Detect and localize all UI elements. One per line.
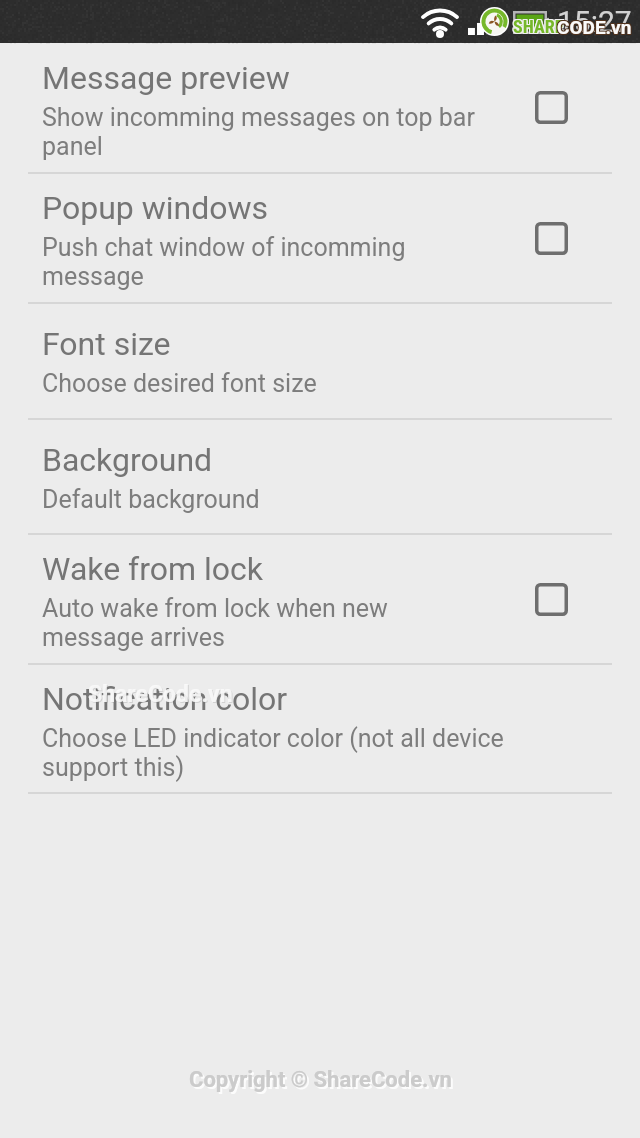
staticText: SHARE — [512, 16, 563, 37]
staticText: SHARE — [513, 15, 564, 36]
staticText: Background — [42, 441, 213, 479]
button[interactable]: Toggle Wake from lock — [535, 583, 568, 616]
staticText: CODE.vn — [556, 15, 631, 37]
staticText: SHARE — [514, 17, 565, 38]
staticText: Auto wake from lock when new message arr… — [42, 594, 442, 652]
staticText: SHARE — [513, 16, 564, 37]
staticText: Wake from lock — [42, 550, 263, 588]
staticText: Font size — [42, 325, 171, 363]
button[interactable]: Notification color — [0, 665, 640, 792]
staticText: Copyright © ShareCode.vn — [191, 1069, 454, 1095]
staticText: Copyright © ShareCode.vn — [189, 1067, 452, 1093]
staticText: CODE.vn — [556, 17, 631, 39]
staticText: CODE.vn — [557, 15, 632, 37]
staticText: SHARE — [513, 17, 564, 38]
other: Battery — [513, 11, 549, 34]
staticText: SHARE — [514, 15, 565, 36]
staticText: Show incomming messages on top bar panel — [42, 103, 502, 161]
button[interactable]: Font size — [0, 304, 640, 418]
staticText: Message preview — [42, 59, 290, 97]
staticText: SHARE — [514, 16, 565, 37]
button[interactable]: Background — [0, 420, 640, 533]
staticText: CODE.vn — [557, 16, 632, 38]
staticText: Choose LED indicator color (not all devi… — [42, 724, 542, 782]
button[interactable]: Popup windows — [0, 174, 640, 302]
staticText: CODE.vn — [557, 17, 632, 39]
staticText: CODE.vn — [558, 17, 633, 39]
staticText: CODE.vn — [558, 16, 633, 38]
staticText: ShareCode.vn — [88, 681, 233, 708]
button[interactable]: Wake from lock — [0, 535, 640, 663]
staticText: SHARE — [512, 17, 563, 38]
button[interactable]: Message preview — [0, 43, 640, 172]
staticText: Popup windows — [42, 189, 269, 227]
staticText: Default background — [42, 485, 602, 514]
staticText: CODE.vn — [558, 15, 633, 37]
staticText: ShareCode.vn — [89, 682, 234, 709]
other: Wi-Fi — [420, 6, 460, 40]
staticText: Push chat window of incomming message — [42, 233, 442, 291]
staticText: Notification color — [42, 680, 288, 718]
staticText: SHARE — [512, 15, 563, 36]
staticText: Choose desired font size — [42, 369, 602, 398]
staticText: 15:27 — [557, 4, 632, 39]
staticText: CODE.vn — [556, 16, 631, 38]
other: Signal strength — [468, 13, 502, 35]
button[interactable]: Toggle Message preview — [535, 91, 568, 124]
button[interactable]: Toggle Popup windows — [535, 222, 568, 255]
